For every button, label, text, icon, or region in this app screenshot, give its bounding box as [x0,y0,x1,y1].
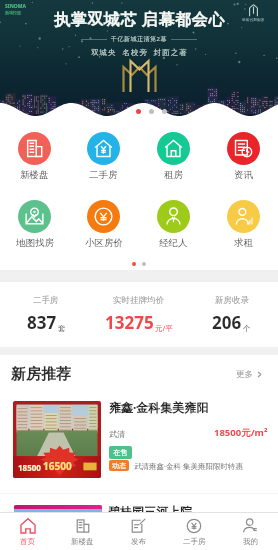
staticText: 千亿新城正清第2幕 [111,35,167,43]
button[interactable]: 地图找房 [0,187,69,256]
button[interactable]: 18500 [0,393,278,478]
staticText: 碧桂园三河上院 [108,504,192,519]
staticText: 18500元/m² [214,426,268,439]
button[interactable]: 首页 [0,513,55,550]
staticText: SINOMA [5,3,26,10]
button[interactable]: Promotion banner [0,0,278,118]
staticText: 求租 [234,237,253,249]
button[interactable]: 求租 [208,187,278,256]
button[interactable]: 资讯 [208,118,278,187]
staticText: 206 [212,311,242,334]
button[interactable]: 经纪人 [138,187,208,256]
button[interactable]: 小区房价 [69,187,138,256]
button[interactable]: 租房 [138,118,208,187]
button[interactable]: 发布 [110,513,166,550]
button[interactable]: 二手房 [0,282,92,347]
staticText: 在售 [113,448,128,457]
button[interactable]: 实时挂牌均价 [92,282,185,347]
staticText: 实时挂牌均价 [113,295,164,306]
staticText: 执掌双城芯 启幕都会心 [54,8,225,30]
staticText: 新房推荐 [11,365,71,384]
staticText: 16500 [43,459,72,473]
staticText: 武清 [109,429,125,439]
staticText: 二手房 [33,295,59,306]
staticText: 我的 [243,537,258,546]
staticText: 武清雍鑫·金科 集美雍阳限时特惠 [134,461,243,471]
button[interactable]: 更多 [232,365,267,384]
button[interactable]: 碧桂园三河上院 [0,505,278,550]
button[interactable]: 二手房 [166,513,222,550]
button[interactable]: 新楼盘 [55,513,110,550]
staticText: 13275 [105,311,154,334]
staticText: 837 [27,311,57,334]
staticText: 个 [243,324,251,333]
button[interactable]: 新房收录 [185,282,278,347]
staticText: 新楼盘 [20,169,49,181]
staticText: 发布 [131,537,146,546]
staticText: 更多 [236,369,253,380]
button[interactable]: 新楼盘 [0,118,69,187]
staticText: 套 [58,324,66,333]
button[interactable]: 我的 [222,513,278,550]
staticText: 新楼盘 [71,537,94,546]
staticText: 资讯 [234,169,253,181]
staticText: 经纪人 [159,237,188,249]
staticText: 地图找房 [16,237,54,249]
staticText: 新城·控股集团 [242,17,264,22]
staticText: 首页 [20,537,35,546]
staticText: 租房 [164,169,183,181]
button[interactable]: 二手房 [69,118,138,187]
staticText: 双城央 名校旁 封面之著 [91,47,188,57]
staticText: 二手房 [183,537,206,546]
staticText: 动态 [112,461,126,470]
staticText: 新房收录 [215,295,249,306]
staticText: 18500 [18,462,41,473]
staticText: 雍鑫·金科集美雍阳 [109,399,209,415]
staticText: 元/平 [155,323,173,333]
staticText: 新城控股 [5,10,21,15]
staticText: 二手房 [89,169,118,181]
staticText: 小区房价 [85,237,123,249]
